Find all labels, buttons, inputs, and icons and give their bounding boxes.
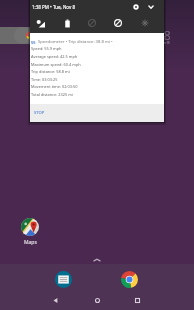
button[interactable]: Maps [13, 218, 47, 246]
button[interactable]: Battery saver [60, 16, 74, 30]
button[interactable]: Auto rotate [85, 16, 99, 30]
staticText: Speed: 55.9 mph [31, 46, 62, 51]
button[interactable]: Settings [130, 1, 142, 13]
button[interactable]: Home [87, 290, 107, 310]
button[interactable]: Recents [127, 290, 147, 310]
staticText: Maximum speed: 60.4 mph [31, 62, 81, 67]
staticText: 1:38 PM • Tue, Nov 8 [32, 4, 75, 10]
button[interactable]: Chrome [121, 271, 138, 288]
button[interactable]: STOP [34, 104, 56, 122]
button[interactable]: Back [45, 290, 65, 310]
button[interactable] [0, 27, 46, 44]
staticText: Speedometer • Trip distance: 38.8 mi • [38, 39, 113, 45]
button[interactable]: Flashlight [138, 16, 152, 30]
staticText: STOP [34, 110, 45, 116]
staticText: Average speed: 42.5 mph [31, 54, 78, 59]
button[interactable]: Collapse [145, 1, 157, 13]
staticText: Maps [24, 239, 37, 246]
staticText: 1:38 [147, 27, 171, 43]
button[interactable]: Do not disturb [111, 16, 125, 30]
staticText: Total distance: 2325 mi [31, 92, 73, 97]
staticText: 55 [31, 40, 36, 45]
button[interactable]: Messages [55, 271, 72, 288]
staticText: Movement time: 02:03:50 [31, 84, 78, 89]
staticText: Trip distance: 58.8 mi [31, 69, 70, 74]
staticText: Time: 03:03:25 [31, 77, 58, 82]
staticText: Tue, Nov 8 [150, 40, 170, 45]
button[interactable]: Wifi [33, 16, 47, 30]
